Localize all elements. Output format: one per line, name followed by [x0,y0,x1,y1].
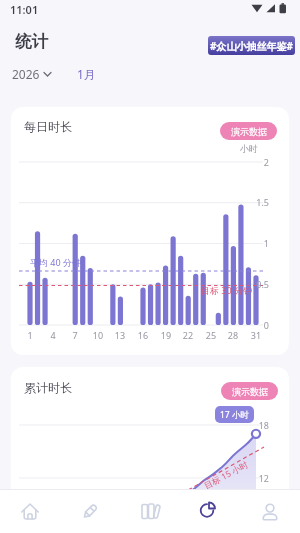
staticText: 28 [223,329,243,341]
staticText: 0.5 [247,278,269,290]
staticText: 平均 40 分钟 [30,256,81,268]
staticText: 16 [133,329,153,341]
staticText: 10 [88,329,108,341]
staticText: 演示数据 [231,126,267,137]
staticText: 22 [178,329,198,341]
staticText: 1月 [77,66,96,82]
staticText: 演示数据 [232,386,268,397]
staticText: 12 [247,472,269,484]
staticText: #众山小抽丝年鉴# [210,39,293,53]
staticText: 19 [156,329,176,341]
staticText: 4 [43,329,63,341]
staticText: 11:01 [10,2,39,17]
staticText: 13 [110,329,130,341]
staticText: 17 小时 [220,409,249,421]
staticText: 累计时长 [24,380,72,395]
staticText: 2026 [12,66,40,82]
staticText: 18 [247,419,269,431]
staticText: 统计 [15,31,48,52]
staticText: 小时 [228,143,258,154]
staticText: 1 [20,329,40,341]
staticText: 1.5 [247,196,269,208]
staticText: 31 [246,329,266,341]
staticText: 每日时长 [24,119,72,134]
staticText: 目标 30 分钟 [201,284,252,296]
staticText: 0 [247,319,269,331]
staticText: 7 [65,329,85,341]
staticText: 2 [247,156,269,168]
staticText: 25 [201,329,221,341]
staticText: 1 [247,237,269,249]
staticText: 目标 15 小时 [202,458,251,492]
